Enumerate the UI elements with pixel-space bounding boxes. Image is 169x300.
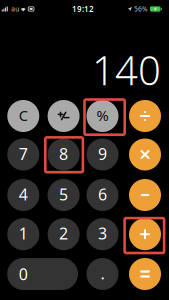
button[interactable]: 4 [7, 179, 39, 211]
button[interactable]: Plus minus [48, 100, 80, 132]
button[interactable]: 2 [48, 218, 80, 250]
button[interactable]: C [7, 100, 39, 132]
staticText: 3 [98, 223, 107, 244]
staticText: 56% [134, 5, 148, 13]
staticText: . [100, 263, 104, 284]
staticText: 4 [19, 184, 28, 205]
staticText: 2 [59, 223, 68, 244]
staticText: 0 [19, 263, 28, 285]
staticText: 9 [98, 143, 107, 164]
staticText: 19:12 [72, 4, 94, 14]
button[interactable]: 9 [86, 138, 118, 170]
staticText: 5 [59, 184, 68, 205]
button[interactable]: Equals [129, 258, 161, 290]
button[interactable]: 3 [86, 218, 118, 250]
button[interactable]: 6 [86, 179, 118, 211]
staticText: 140 [92, 43, 161, 96]
button[interactable]: % [86, 100, 118, 132]
staticText: 7 [19, 143, 28, 164]
button[interactable]: Plus [129, 218, 161, 250]
button[interactable]: 8 [48, 138, 80, 170]
button[interactable]: . [86, 258, 118, 290]
staticText: C [19, 105, 28, 125]
button[interactable]: 1 [7, 218, 39, 250]
staticText: 6 [98, 184, 107, 205]
button[interactable]: 7 [7, 138, 39, 170]
staticText: 1 [19, 223, 28, 244]
button[interactable]: Multiply [129, 138, 161, 170]
button[interactable]: 5 [48, 179, 80, 211]
button[interactable]: Minus [129, 179, 161, 211]
button[interactable]: Divide [129, 100, 161, 132]
button[interactable]: 0 [7, 258, 78, 290]
staticText: % [96, 105, 108, 125]
staticText: 8 [59, 143, 68, 164]
staticText: au [11, 5, 19, 13]
